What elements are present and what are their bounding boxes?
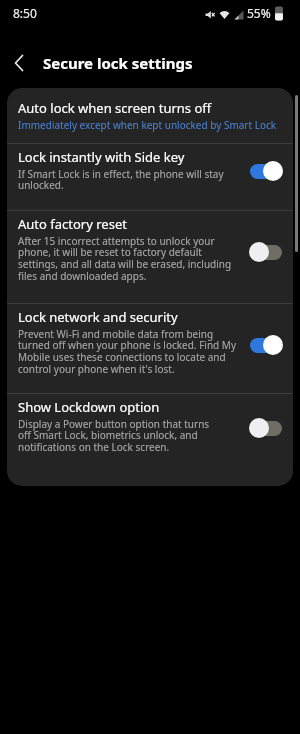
staticText: Immediately except when kept unlocked by… [18, 118, 277, 132]
staticText: After 15 incorrect attempts to unlock yo… [18, 234, 232, 283]
button[interactable] [249, 161, 283, 181]
button[interactable]: Auto factory reset [7, 211, 293, 303]
button[interactable]: Lock network and security [7, 304, 293, 393]
staticText: Display a Power button option that turns… [18, 417, 210, 454]
staticText: 8:50 [13, 5, 37, 21]
button[interactable] [249, 242, 283, 262]
staticText: Lock instantly with Side key [18, 148, 185, 166]
staticText: Secure lock settings [43, 53, 193, 73]
staticText: 55% [247, 5, 271, 21]
button[interactable]: Auto lock when screen turns off [7, 88, 293, 143]
button[interactable] [249, 335, 283, 355]
staticText: Lock network and security [18, 308, 178, 326]
staticText: If Smart Lock is in effect, the phone wi… [18, 167, 224, 192]
staticText: Prevent Wi-Fi and mobile data from being… [18, 327, 237, 376]
button[interactable]: Lock instantly with Side key [7, 144, 293, 210]
button[interactable] [249, 418, 283, 438]
staticText: Auto factory reset [18, 215, 127, 233]
button[interactable]: Show Lockdown option [7, 394, 293, 486]
staticText: Show Lockdown option [18, 398, 160, 416]
button[interactable] [0, 43, 40, 83]
staticText: Auto lock when screen turns off [18, 99, 212, 117]
